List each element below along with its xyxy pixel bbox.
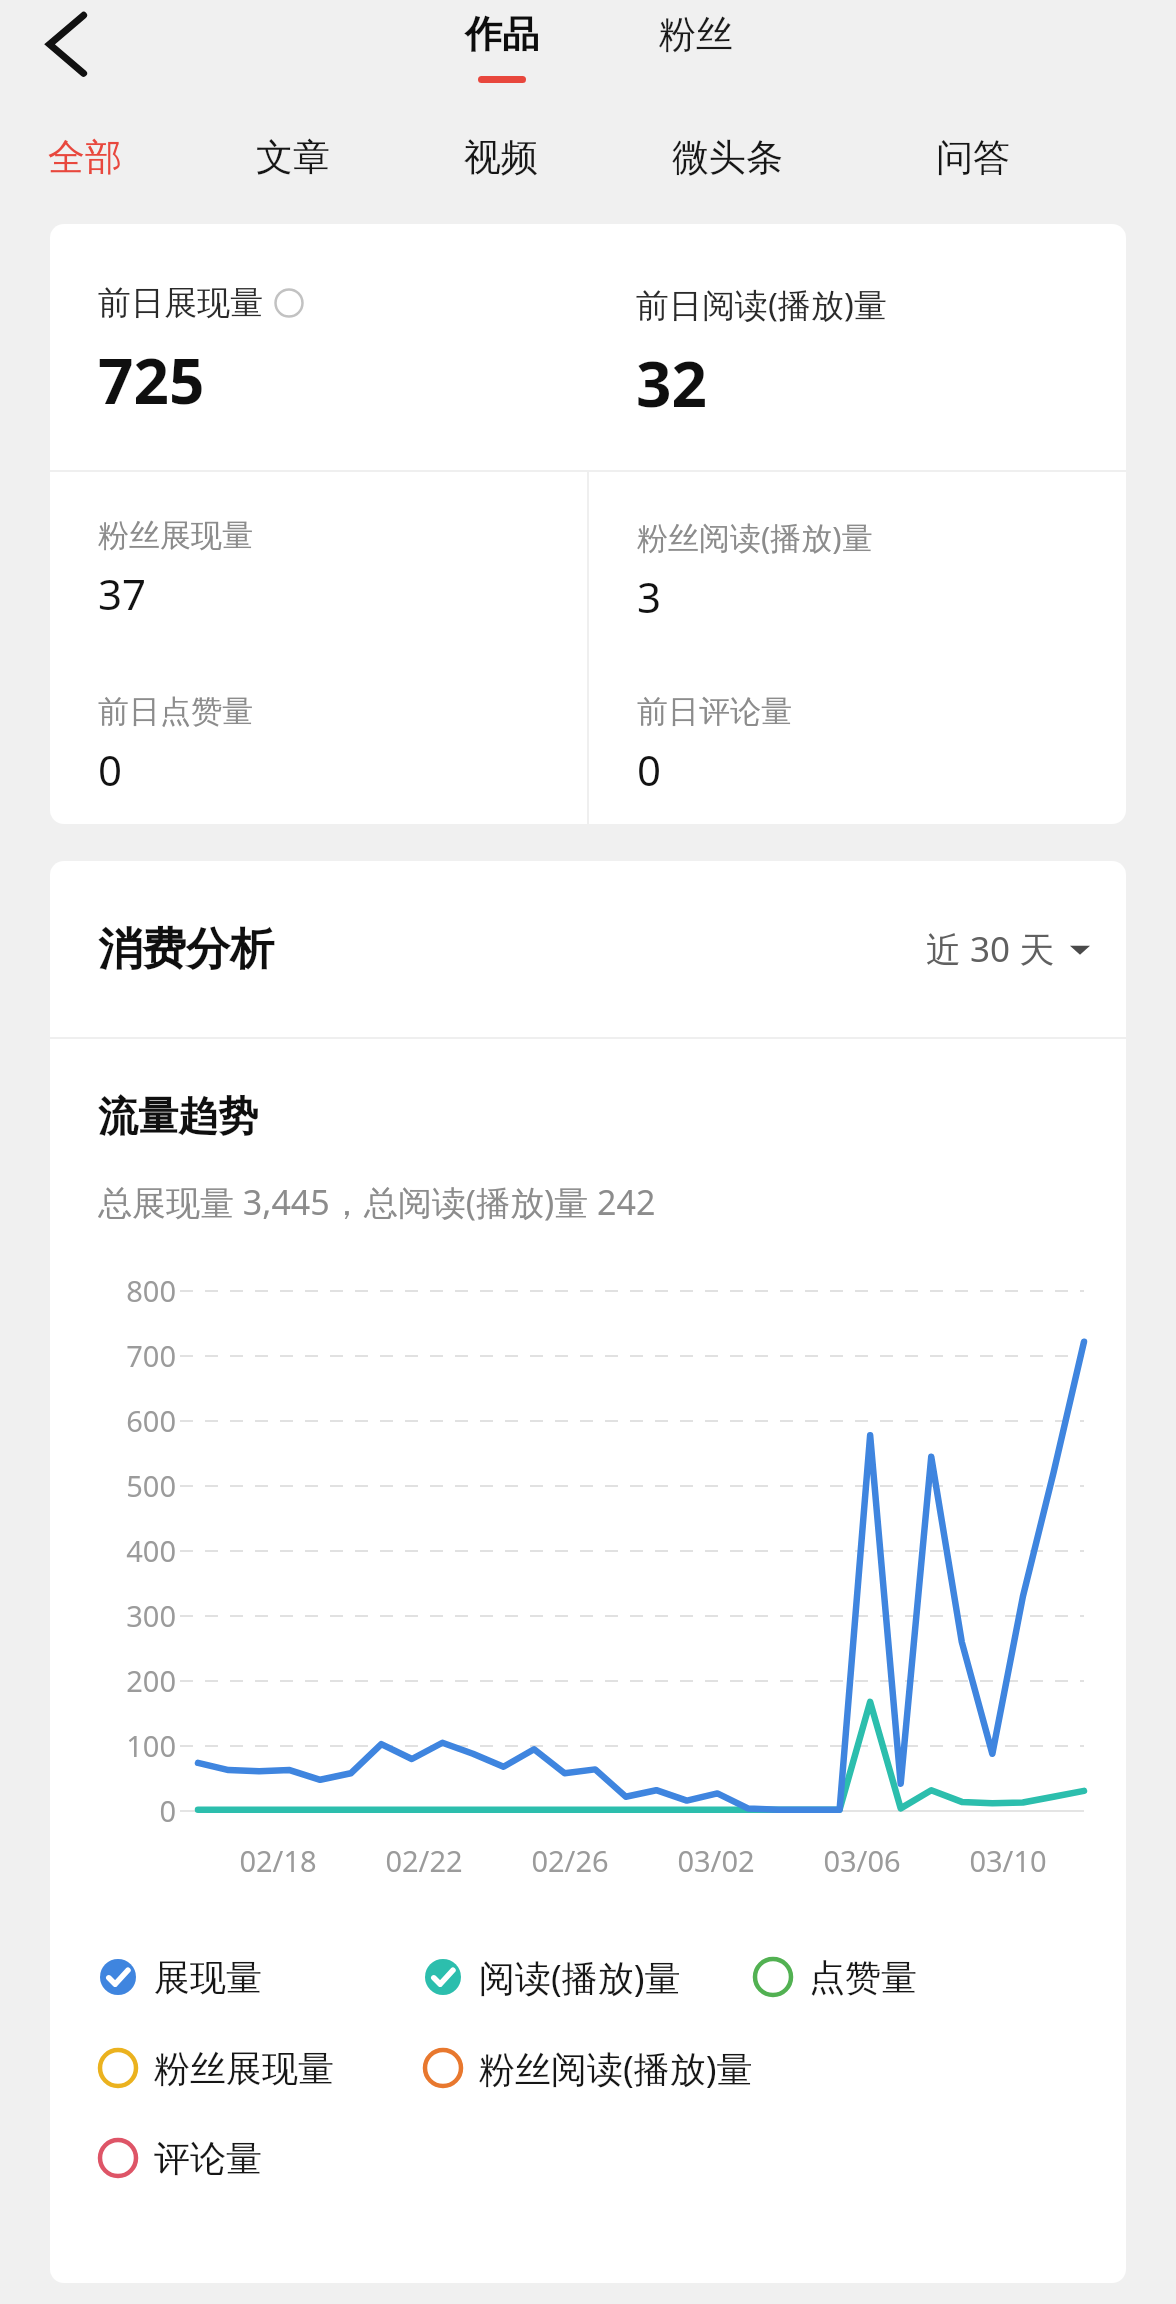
staticText: 725 [98,338,205,422]
staticText: 800 [66,1271,176,1310]
button[interactable]: Back [16,2,108,94]
staticText: 400 [66,1531,176,1570]
staticText: 点赞量 [809,1955,917,2000]
button[interactable]: 粉丝阅读(播放)量 [423,2023,823,2113]
button[interactable]: 作品 [412,0,592,104]
button[interactable]: 前日点赞量 [50,648,587,824]
button[interactable]: 问答 [936,104,1010,210]
staticText: 消费分析 [98,922,274,977]
staticText: 总展现量 3,445，总阅读(播放)量 242 [98,1179,656,1225]
staticText: 300 [66,1596,176,1635]
staticText: 粉丝阅读(播放)量 [637,516,873,558]
staticText: 0 [98,741,123,798]
staticText: 粉丝展现量 [98,516,253,555]
button[interactable]: 文章 [256,104,330,210]
button[interactable]: 近 30 天 [926,925,1092,973]
staticText: 02/22 [364,1841,484,1880]
staticText: 03/02 [656,1841,776,1880]
button[interactable]: 粉丝展现量 [98,2023,423,2113]
staticText: 展现量 [154,1955,262,2000]
button[interactable]: 全部 [48,104,122,210]
staticText: 200 [66,1661,176,1700]
staticText: 文章 [256,134,330,181]
staticText: 全部 [48,134,122,181]
staticText: 3 [637,568,662,625]
button[interactable]: 点赞量 [753,1931,1003,2023]
staticText: 03/10 [948,1841,1068,1880]
staticText: 微头条 [672,134,783,181]
staticText: 03/06 [802,1841,922,1880]
button[interactable]: 微头条 [672,104,783,210]
staticText: 100 [66,1726,176,1765]
button[interactable]: 粉丝展现量 [50,472,587,648]
staticText: 37 [98,565,147,622]
staticText: 前日阅读(播放)量 [636,282,887,327]
staticText: 视频 [464,134,538,181]
staticText: 0 [66,1791,176,1830]
button[interactable]: 视频 [464,104,538,210]
button[interactable]: 前日阅读(播放)量 [588,224,1126,470]
staticText: 32 [636,341,707,425]
staticText: 500 [66,1466,176,1505]
staticText: 粉丝阅读(播放)量 [479,2044,753,2093]
staticText: 前日评论量 [637,692,792,731]
button[interactable]: 前日评论量 [589,648,1126,824]
button[interactable]: 评论量 [98,2113,423,2203]
staticText: 600 [66,1401,176,1440]
staticText: 前日展现量 [98,282,263,324]
staticText: 阅读(播放)量 [479,1953,681,2002]
staticText: 作品 [465,11,539,58]
button[interactable]: 阅读(播放)量 [423,1931,753,2023]
staticText: 问答 [936,134,1010,181]
staticText: 流量趋势 [98,1091,258,1141]
button[interactable]: 粉丝阅读(播放)量 [589,472,1126,648]
staticText: 02/26 [510,1841,630,1880]
staticText: 前日点赞量 [98,692,253,731]
staticText: 0 [637,741,662,798]
staticText: 评论量 [154,2136,262,2181]
button[interactable]: 粉丝 [606,0,786,104]
staticText: 近 30 天 [926,925,1055,973]
staticText: 粉丝 [659,11,733,58]
staticText: 粉丝展现量 [154,2046,334,2091]
staticText: 700 [66,1336,176,1375]
staticText: 02/18 [218,1841,338,1880]
button[interactable]: 展现量 [98,1931,423,2023]
button[interactable]: 前日展现量 [50,224,588,470]
